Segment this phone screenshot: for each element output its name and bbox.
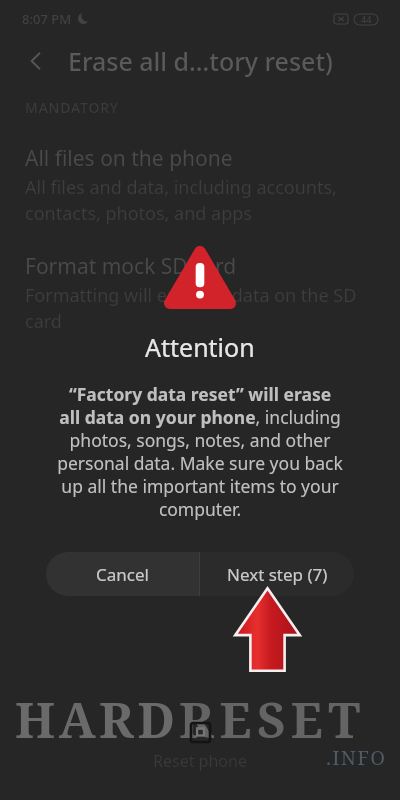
staticText: Reset phone (153, 750, 247, 772)
button[interactable]: Reset phone (153, 723, 247, 772)
button[interactable]: Back (18, 43, 54, 79)
staticText: .INFO (326, 744, 387, 771)
button[interactable]: Next step (7) (200, 552, 354, 596)
staticText: HARD (15, 686, 179, 753)
staticText: Attention (145, 330, 255, 364)
staticText: 44 (361, 13, 372, 25)
staticText: All files on the phone (25, 144, 233, 173)
button[interactable]: Cancel (46, 552, 199, 596)
staticText: Formatting will erase all data on the SD… (25, 283, 357, 333)
staticText: All files and data, including accounts, … (25, 175, 337, 225)
staticText: Cancel (96, 563, 149, 586)
staticText: RESET (179, 686, 366, 753)
staticText: Format mock SD card (25, 252, 237, 281)
staticText: Next step (7) (227, 563, 328, 586)
staticText: “Factory data reset” will erase all data… (28, 382, 372, 522)
staticText: MANDATORY (25, 98, 119, 117)
staticText: Erase all d…tory reset) (68, 44, 333, 78)
staticText: 8:07 PM (22, 10, 72, 28)
